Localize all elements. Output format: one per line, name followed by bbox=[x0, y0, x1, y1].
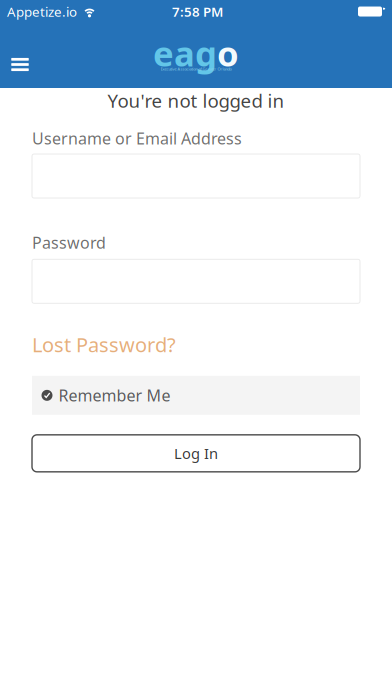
staticText: Username or Email Address bbox=[32, 128, 242, 149]
staticText: Password bbox=[32, 232, 106, 253]
button[interactable]: Lost Password? bbox=[32, 331, 176, 358]
staticText: 7:58 PM bbox=[172, 3, 223, 20]
staticText: o bbox=[217, 30, 239, 76]
button[interactable]: Log In bbox=[32, 435, 360, 472]
button[interactable]: Menu bbox=[0, 26, 40, 84]
button[interactable]: Remember Me bbox=[32, 376, 360, 415]
staticText: Remember Me bbox=[58, 385, 170, 406]
staticText: You're not logged in bbox=[107, 88, 284, 113]
staticText: Executive Association of Greater Orlando bbox=[160, 66, 231, 72]
staticText: Appetize.io bbox=[7, 3, 77, 20]
staticText: Lost Password? bbox=[32, 331, 176, 358]
staticText: Log In bbox=[174, 444, 218, 463]
staticText: eag bbox=[153, 30, 217, 76]
